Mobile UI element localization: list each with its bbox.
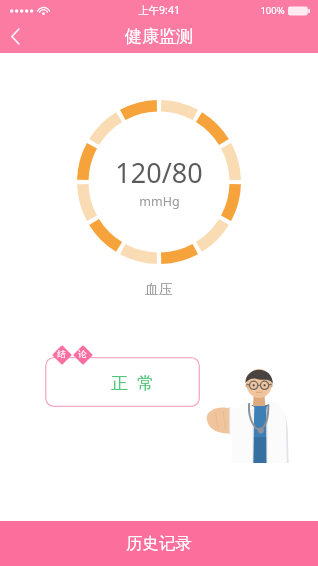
staticText: mmHg [139,193,180,210]
staticText: 正 常 [111,371,154,394]
staticText: 100% [260,4,285,17]
button[interactable]: Back [0,20,36,53]
staticText: 上午9:41 [138,3,180,17]
button[interactable]: 正 常 [45,357,200,407]
staticText: 健康监测 [125,26,193,47]
staticText: 历史记录 [126,533,192,554]
staticText: 120/80 [115,154,203,191]
staticText: 血压 [145,281,173,299]
button[interactable]: 历史记录 [0,521,318,566]
staticText: 论 [78,349,87,360]
staticText: 结 [57,349,66,360]
